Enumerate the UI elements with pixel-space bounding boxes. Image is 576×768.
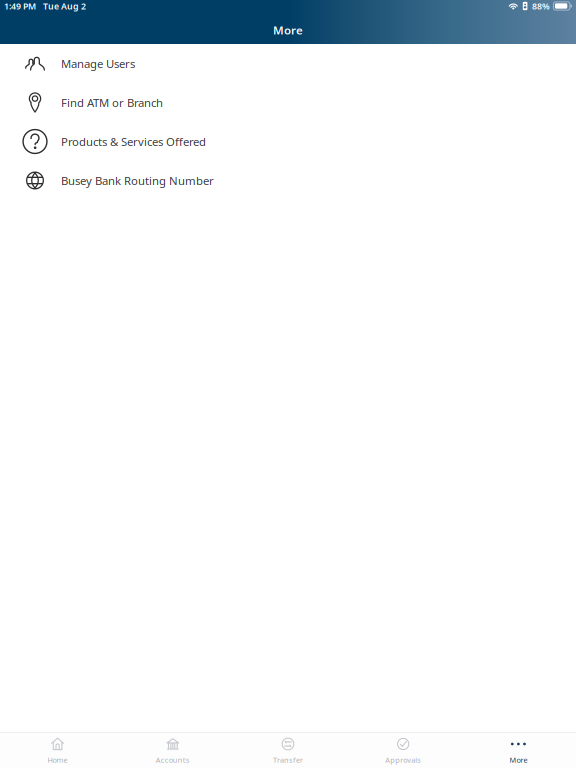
staticText: Home — [48, 755, 68, 765]
button[interactable]: Busey Bank Routing Number — [0, 161, 576, 200]
button[interactable]: Accounts — [115, 733, 230, 768]
staticText: More — [273, 22, 303, 38]
button[interactable]: Home — [0, 733, 115, 768]
button[interactable]: Products & Services Offered — [0, 122, 576, 161]
staticText: Transfer — [273, 755, 303, 765]
staticText: Manage Users — [61, 56, 135, 71]
staticText: 1:49 PM — [4, 0, 36, 12]
staticText: Products & Services Offered — [61, 134, 206, 149]
button[interactable]: More — [461, 733, 576, 768]
button[interactable]: Find ATM or Branch — [0, 83, 576, 122]
staticText: Approvals — [385, 755, 421, 765]
staticText: More — [509, 755, 527, 765]
staticText: Tue Aug 2 — [43, 0, 86, 12]
button[interactable]: Transfer — [230, 733, 346, 768]
staticText: Busey Bank Routing Number — [61, 173, 214, 188]
staticText: Accounts — [156, 755, 190, 765]
staticText: 88% — [532, 0, 550, 12]
staticText: Find ATM or Branch — [61, 95, 163, 110]
button[interactable]: Approvals — [346, 733, 461, 768]
button[interactable]: Manage Users — [0, 44, 576, 83]
